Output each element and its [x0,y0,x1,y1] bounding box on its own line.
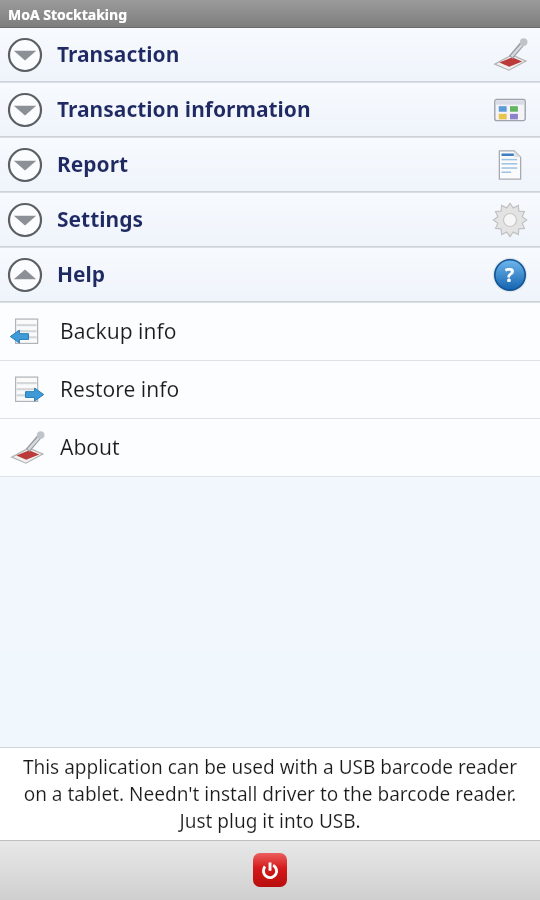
other: Backup info [8,313,46,351]
staticText: Settings [57,205,144,234]
staticText: Help [57,260,106,289]
other: Report [491,146,529,184]
other: Stamp [491,36,529,74]
staticText: Transaction [57,40,180,69]
staticText: Restore info [60,375,180,404]
other: Stamp [8,429,46,467]
staticText: MoA Stocktaking [8,5,127,24]
staticText: This application can be used with a USB … [18,754,522,834]
button[interactable]: Transaction information [0,83,540,136]
other: Settings [491,201,529,239]
button[interactable]: Transaction [0,28,540,81]
staticText: About [60,433,120,462]
button[interactable]: Help [0,248,540,301]
button[interactable]: Power off [253,853,287,887]
other: Help [491,256,529,294]
staticText: Report [57,150,129,179]
button[interactable]: Settings [0,193,540,246]
button[interactable]: Report [0,138,540,191]
staticText: ? [505,262,515,288]
button[interactable]: Restore info [0,361,540,418]
other: Transaction information [491,91,529,129]
staticText: Backup info [60,317,177,346]
other: Restore info [8,371,46,409]
button[interactable]: Stamp [0,419,540,476]
staticText: Transaction information [57,95,311,124]
button[interactable]: Backup info [0,303,540,360]
